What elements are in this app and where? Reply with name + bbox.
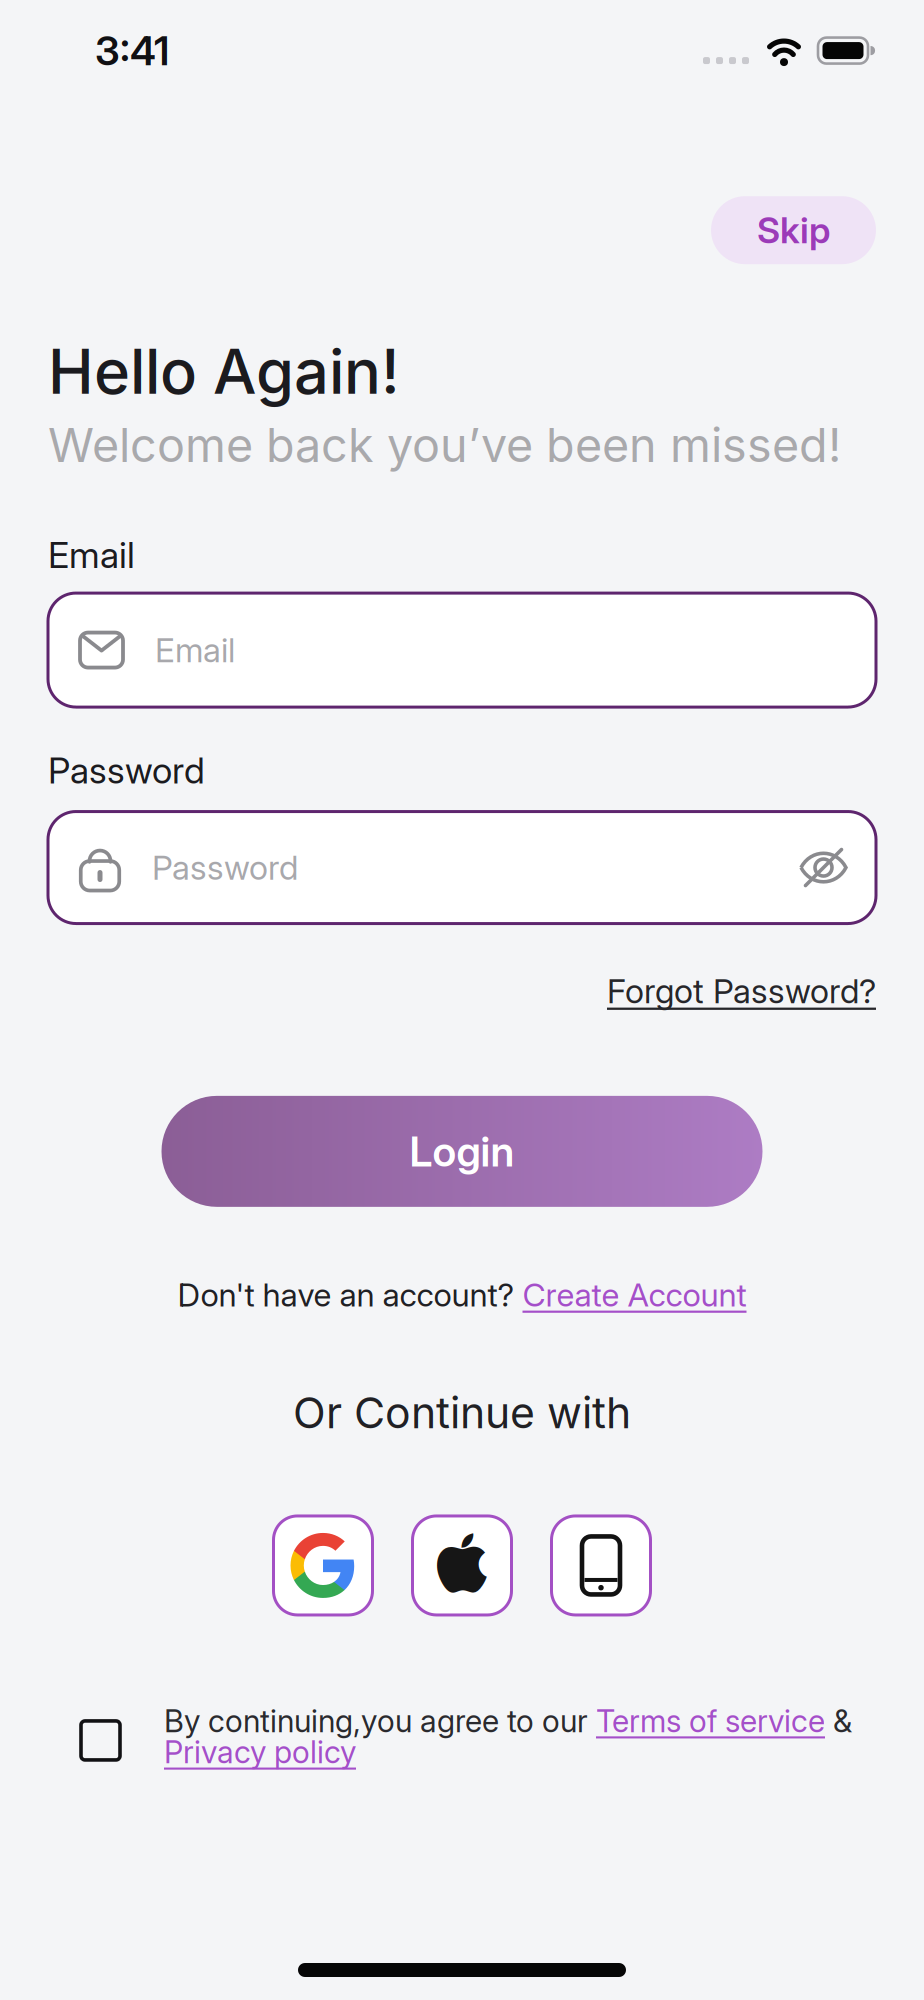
button[interactable]: Login — [161, 1096, 762, 1207]
staticText: & — [825, 1703, 852, 1739]
staticText: Forgot Password? — [607, 971, 876, 1011]
staticText: Terms of service — [596, 1703, 825, 1739]
button[interactable]: Forgot Password? — [607, 971, 876, 1011]
staticText: Or Continue with — [293, 1388, 631, 1438]
button[interactable]: Continue with phone — [551, 1516, 650, 1615]
button[interactable]: Continue with Google — [273, 1516, 372, 1615]
staticText: Create Account — [522, 1276, 746, 1314]
staticText:  — [437, 1533, 487, 1597]
button[interactable]: Skip — [711, 196, 876, 264]
staticText: Skip — [757, 209, 830, 251]
button[interactable]: Password — [48, 811, 876, 923]
button[interactable]: Show password — [799, 847, 848, 887]
staticText: Hello Again! — [48, 335, 400, 408]
button[interactable]: Privacy policy — [164, 1734, 356, 1770]
staticText: Email — [48, 534, 135, 576]
button[interactable]: Continue with Apple — [412, 1516, 511, 1615]
staticText: Privacy policy — [164, 1734, 356, 1770]
staticText: Login — [409, 1127, 514, 1176]
button[interactable]: Create Account — [522, 1276, 746, 1314]
staticText: Welcome back you’ve been missed! — [48, 417, 841, 473]
button[interactable]: Email — [48, 593, 876, 707]
staticText: Don't have an account? — [177, 1276, 522, 1314]
staticText: Email — [155, 630, 235, 670]
staticText: By continuing,you agree to our — [164, 1703, 596, 1739]
button[interactable]: Agree to terms — [81, 1721, 120, 1760]
button[interactable]: Terms of service — [596, 1703, 825, 1739]
staticText: 3:41 — [95, 27, 169, 74]
staticText: Password — [152, 848, 298, 887]
staticText: Password — [48, 749, 205, 792]
